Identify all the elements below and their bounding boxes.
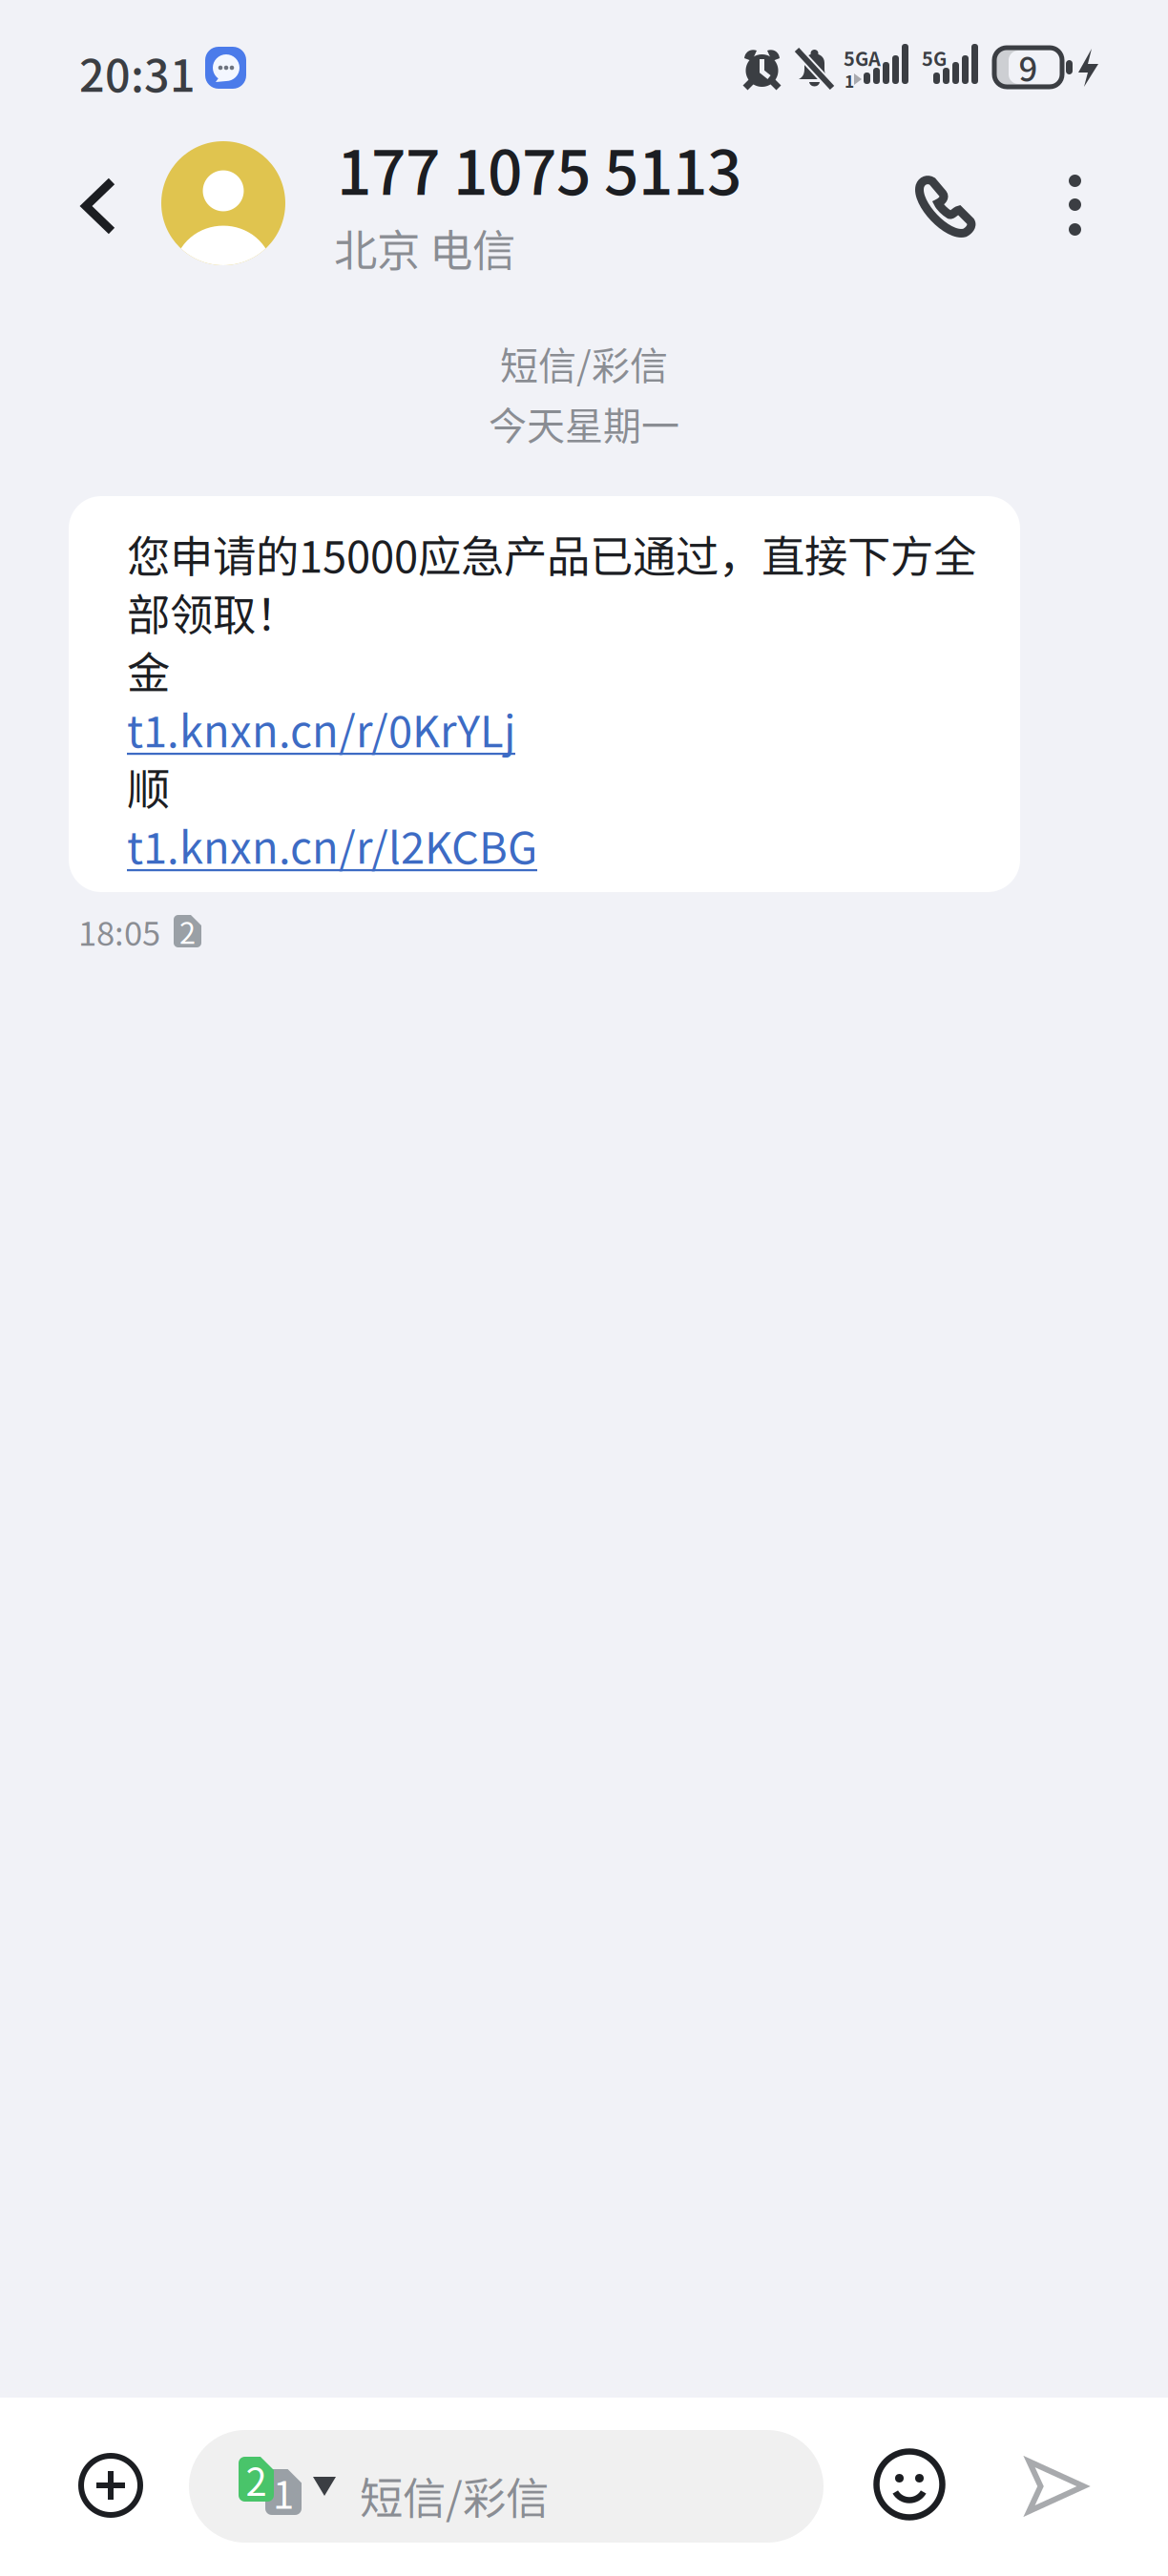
staticText: 177 1075 5113 bbox=[337, 124, 741, 212]
staticText: 2 bbox=[246, 2451, 267, 2507]
button[interactable]: More options bbox=[1034, 154, 1116, 259]
staticText: 今天星期一 bbox=[489, 395, 679, 451]
staticText: 18:05 bbox=[78, 907, 160, 955]
staticText: 北京 电信 bbox=[334, 217, 515, 279]
staticText: 5G bbox=[922, 44, 947, 72]
staticText: 顺 bbox=[127, 755, 170, 818]
staticText: 金 bbox=[127, 639, 170, 702]
staticText: 您申请的15000应急产品已通过，直接下方全 bbox=[127, 523, 976, 585]
button[interactable]: Call bbox=[895, 154, 994, 259]
button[interactable]: 177 1075 5113 bbox=[161, 141, 867, 267]
staticText: 9 bbox=[1019, 43, 1038, 91]
staticText: t1.knxn.cn/r/l2KCBG bbox=[127, 814, 537, 876]
button[interactable]: Emoji bbox=[857, 2432, 962, 2537]
staticText: 短信/彩信 bbox=[500, 335, 668, 391]
staticText: t1.knxn.cn/r/0KrYLj bbox=[127, 697, 515, 760]
button[interactable]: Back bbox=[69, 153, 126, 260]
staticText: 部领取！ bbox=[127, 581, 299, 643]
staticText: 短信/彩信 bbox=[360, 2464, 549, 2527]
staticText: 1 bbox=[845, 69, 854, 93]
staticText: 5GA bbox=[844, 44, 881, 72]
staticText: 20:31 bbox=[79, 40, 196, 105]
button[interactable]: 1 bbox=[189, 2430, 824, 2543]
button[interactable]: Add attachment bbox=[58, 2433, 163, 2538]
staticText: 1 bbox=[273, 2464, 294, 2520]
button[interactable]: Send bbox=[1004, 2434, 1109, 2539]
staticText: 2 bbox=[179, 910, 196, 952]
